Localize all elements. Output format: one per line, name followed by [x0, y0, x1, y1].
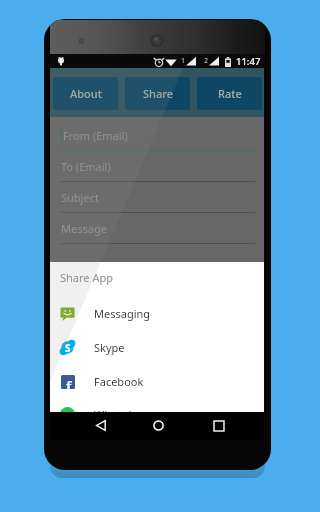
button[interactable]: About [53, 77, 118, 110]
staticText: 2 [204, 56, 209, 66]
staticText: S [65, 341, 71, 355]
staticText: Skype [94, 340, 125, 355]
staticText: 1 [181, 56, 186, 66]
button[interactable]: WhatsApp [50, 397, 264, 412]
staticText: f [66, 377, 72, 389]
staticText: 11:47 [236, 55, 261, 68]
staticText: From (Email) [63, 128, 128, 143]
staticText: To (Email) [61, 159, 111, 174]
button[interactable]: Back [88, 413, 113, 438]
button[interactable]: S [50, 330, 264, 364]
staticText: Facebook [94, 374, 144, 389]
button[interactable]: Home [146, 413, 171, 438]
button[interactable]: Share [125, 77, 190, 110]
staticText: WhatsApp [94, 407, 147, 412]
staticText: About [70, 86, 102, 101]
button[interactable]: Rate [197, 77, 262, 110]
staticText: Share [143, 86, 173, 101]
button[interactable]: Recent apps [206, 413, 231, 438]
button[interactable]: Messaging [50, 296, 264, 330]
staticText: Message [61, 221, 107, 236]
staticText: Subject [61, 190, 99, 205]
staticText: Share App [60, 270, 113, 285]
staticText: Rate [218, 86, 242, 101]
staticText: Messaging [94, 306, 151, 321]
button[interactable]: f [50, 364, 264, 398]
